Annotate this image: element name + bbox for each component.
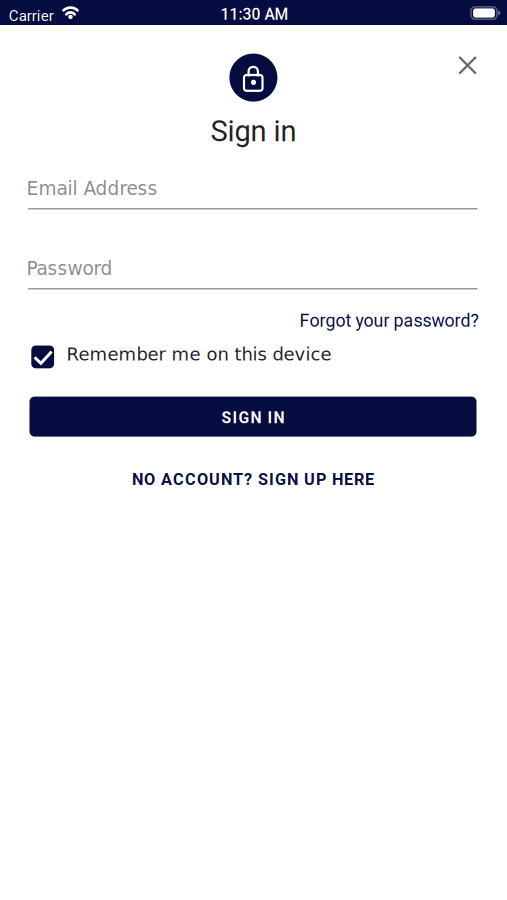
staticText: Carrier [9, 7, 54, 25]
button[interactable]: NO ACCOUNT? SIGN UP HERE [73, 469, 433, 489]
staticText: Password [26, 258, 112, 279]
staticText: Sign in [210, 114, 296, 148]
staticText: SIGN IN [221, 409, 284, 427]
button[interactable]: SIGN IN [29, 397, 476, 437]
button[interactable]: Forgot your password? [299, 310, 478, 331]
button[interactable]: Password [26, 258, 477, 289]
button[interactable]: Remember me on this device [31, 345, 331, 368]
staticText: Forgot your password? [299, 310, 478, 331]
button[interactable] [458, 56, 477, 75]
staticText: Email Address [26, 178, 157, 199]
staticText: 11:30 AM [220, 5, 288, 23]
staticText: NO ACCOUNT? SIGN UP HERE [132, 470, 374, 489]
button[interactable]: Email Address [26, 178, 477, 209]
staticText: Remember me on this device [66, 344, 331, 365]
